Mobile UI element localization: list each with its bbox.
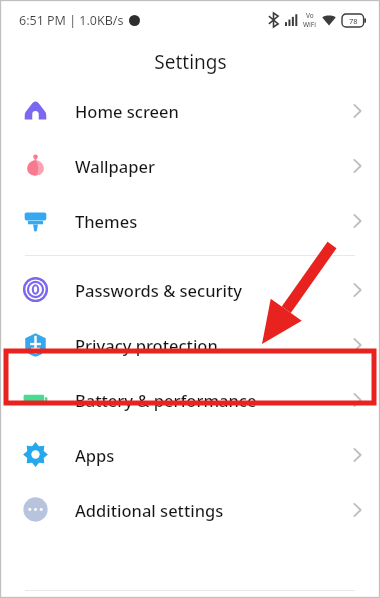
button[interactable]: Additional settings <box>0 482 380 537</box>
staticText: Vo <box>306 11 314 20</box>
staticText: Privacy protection <box>75 334 353 356</box>
staticText: 78 <box>349 16 358 26</box>
button[interactable]: Wallpaper <box>0 138 380 193</box>
staticText: Additional settings <box>75 499 353 521</box>
button[interactable]: Battery & performance <box>0 372 380 427</box>
staticText: Home screen <box>75 100 353 122</box>
staticText: Battery & performance <box>75 389 353 411</box>
staticText: Apps <box>75 444 353 466</box>
staticText: Wallpaper <box>75 155 353 177</box>
button[interactable]: Themes <box>0 193 380 248</box>
button[interactable]: Apps <box>0 427 380 482</box>
staticText: Settings <box>154 49 227 75</box>
staticText: Passwords & security <box>75 279 353 301</box>
staticText: WiFi <box>303 20 317 29</box>
button[interactable]: Privacy protection <box>0 317 380 372</box>
staticText: Themes <box>75 210 353 232</box>
button[interactable]: Home screen <box>0 83 380 138</box>
staticText: 6:51 PM | 1.0KB/s <box>19 12 124 29</box>
button[interactable]: Passwords & security <box>0 262 380 317</box>
